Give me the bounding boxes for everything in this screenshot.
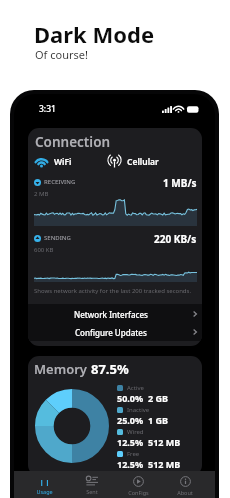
staticText: 12.5%	[117, 436, 144, 448]
staticText: 50.0%	[117, 392, 144, 404]
staticText: About	[177, 489, 193, 496]
staticText: Sent	[86, 488, 98, 495]
button[interactable]: ConFigs	[115, 471, 162, 498]
button[interactable]: Sent	[68, 471, 115, 498]
staticText: Connection	[35, 133, 111, 151]
staticText: 512 MB	[148, 436, 181, 448]
staticText: 3:31	[39, 103, 56, 115]
staticText: Configure Updates	[75, 327, 147, 338]
staticText: Of course!	[35, 47, 88, 62]
other: ConFigs	[133, 476, 144, 487]
staticText: Wired	[127, 428, 144, 436]
button[interactable]: Configure Updates	[28, 323, 202, 341]
staticText: 220 KB/s	[154, 232, 197, 246]
staticText: WiFi	[54, 156, 72, 168]
staticText: SENDING	[44, 234, 71, 242]
staticText: RECEIVING	[44, 178, 76, 186]
staticText: 1 MB/s	[163, 176, 197, 190]
staticText: Cellular	[127, 156, 159, 168]
staticText: Free	[127, 450, 140, 458]
staticText: 87.5%	[91, 360, 129, 378]
other: Usage	[40, 476, 50, 486]
staticText: 2 MB	[34, 190, 49, 198]
staticText: 1 GB	[148, 414, 168, 426]
button[interactable]: Network Interfaces	[28, 305, 202, 323]
staticText: 2 GB	[148, 392, 168, 404]
staticText: Active	[127, 384, 144, 392]
other: Sent	[86, 476, 98, 486]
staticText: ConFigs	[128, 489, 149, 496]
staticText: Memory	[34, 360, 91, 378]
staticText: 600 KB	[34, 246, 54, 254]
staticText: Usage	[36, 488, 53, 495]
button[interactable]: Usage	[21, 471, 68, 498]
staticText: 12.5%	[117, 458, 144, 470]
staticText: Network Interfaces	[74, 309, 148, 320]
staticText: U	[40, 476, 50, 486]
staticText: 25.0%	[117, 414, 144, 426]
staticText: Dark Mode	[34, 19, 155, 49]
staticText: 512 MB	[148, 458, 181, 470]
staticText: Inactive	[127, 406, 150, 414]
button[interactable]: About	[162, 471, 208, 498]
staticText: Shows network activity for the last 200 …	[34, 287, 192, 295]
other: About	[180, 476, 191, 487]
